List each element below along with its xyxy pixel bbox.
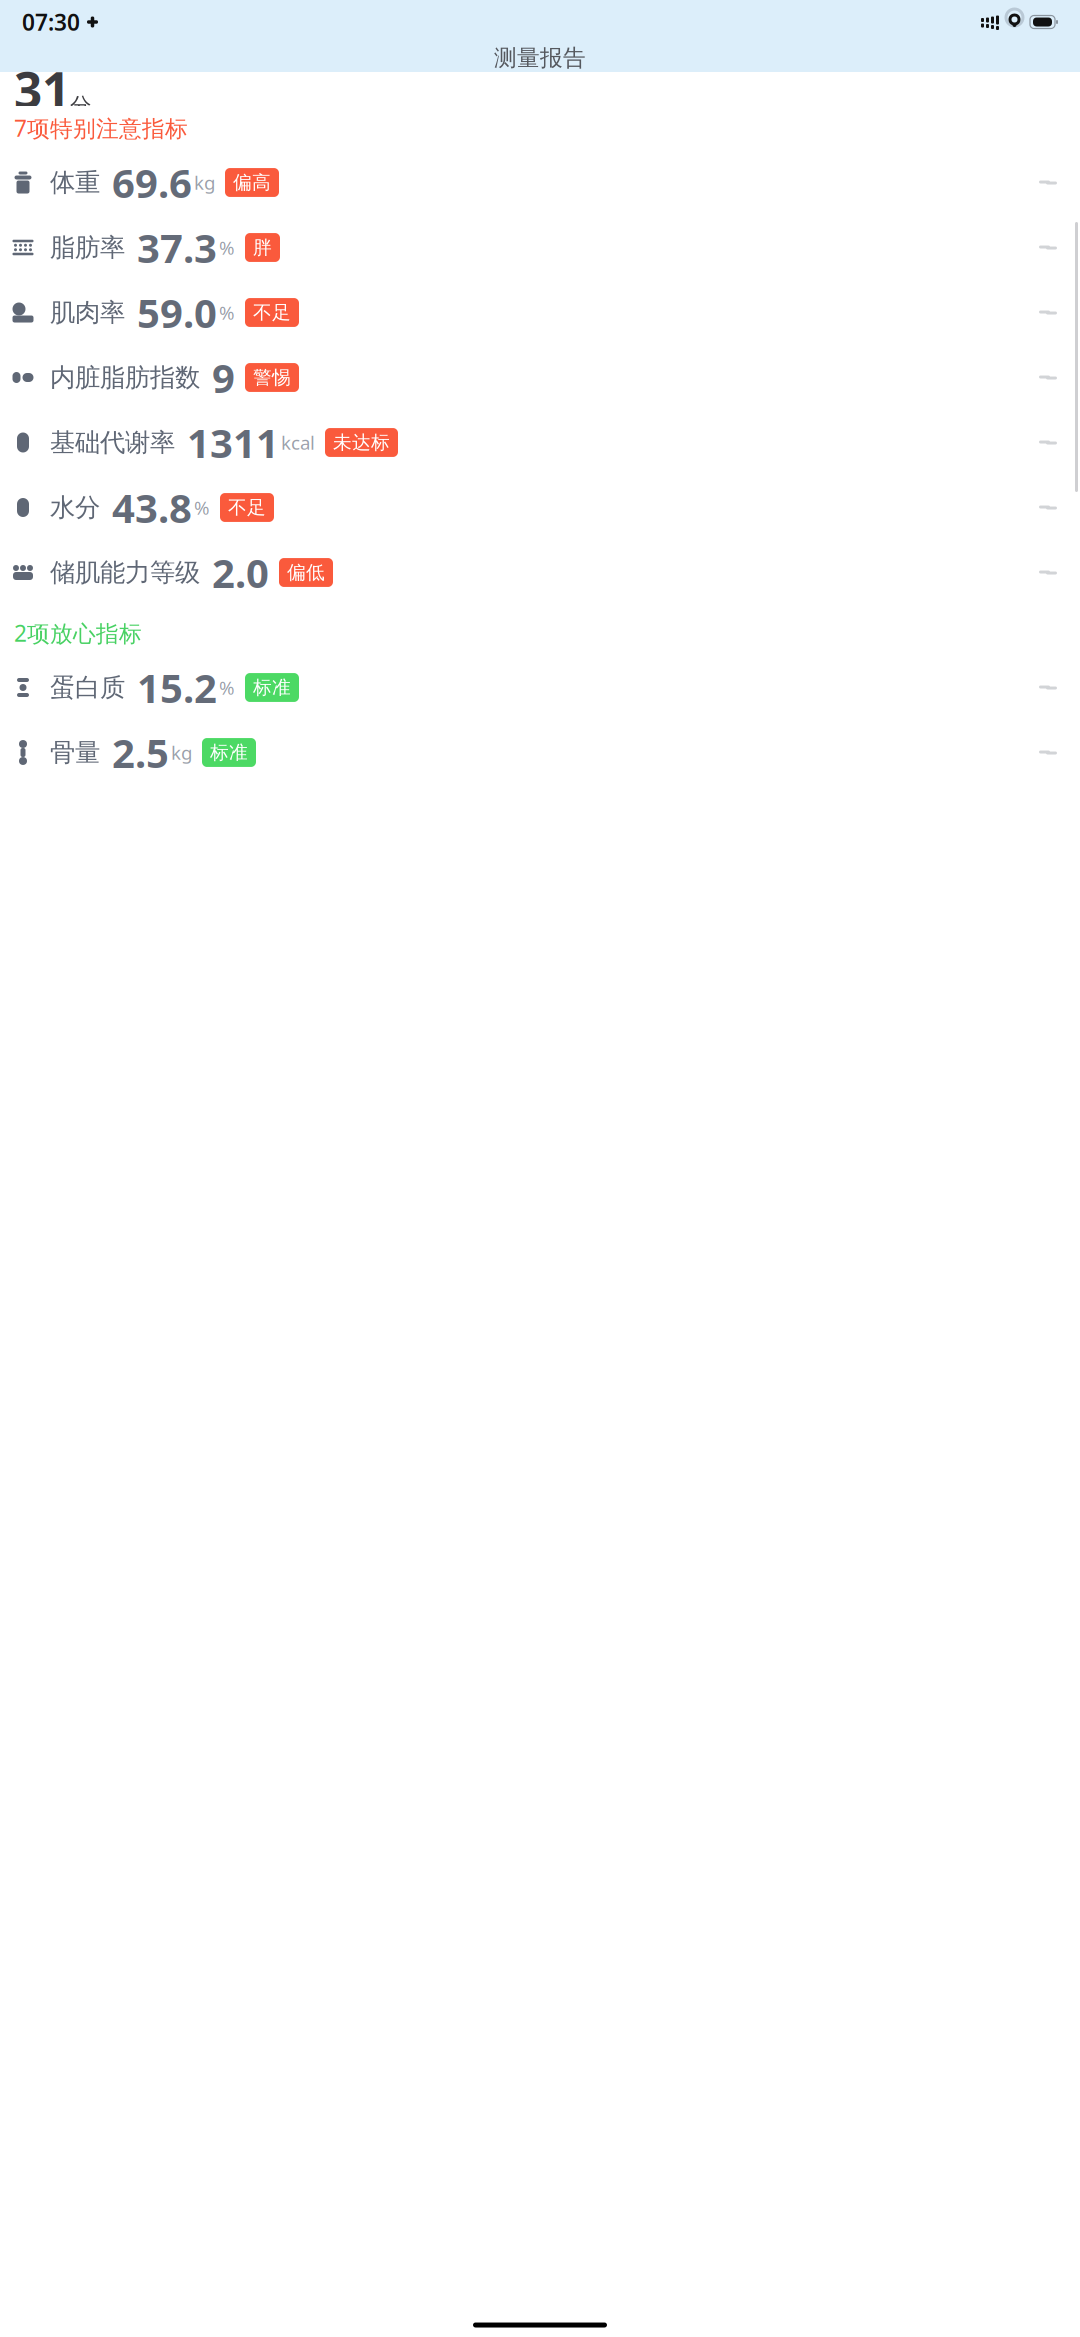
button[interactable]: 内脏脂肪指数 — [0, 345, 1080, 410]
staticText: 07:30 — [22, 7, 80, 37]
staticText: 15.2 — [137, 661, 217, 714]
staticText: 胖 — [253, 236, 272, 259]
staticText: 标准 — [253, 676, 291, 699]
staticText: 偏低 — [287, 561, 325, 584]
staticText: % — [219, 300, 235, 325]
staticText: 9 — [212, 351, 235, 404]
staticText: 31 — [14, 56, 70, 122]
staticText: 基础代谢率 — [50, 427, 175, 458]
staticText: 体重 — [50, 167, 100, 198]
staticText: 37.3 — [137, 221, 217, 274]
staticText: 警惕 — [253, 366, 291, 389]
staticText: % — [194, 495, 210, 520]
staticText: 水分 — [50, 492, 100, 523]
staticText: % — [219, 235, 235, 260]
staticText: 分 — [70, 93, 91, 119]
staticText: 偏高 — [233, 171, 271, 194]
staticText: 蛋白质 — [50, 672, 125, 703]
staticText: kg — [194, 170, 215, 195]
staticText: 内脏脂肪指数 — [50, 362, 200, 393]
staticText: 69.6 — [112, 156, 192, 209]
button[interactable]: 基础代谢率 — [0, 410, 1080, 475]
button[interactable]: 蛋白质 — [0, 655, 1080, 720]
staticText: kcal — [281, 430, 315, 455]
button[interactable]: 骨量 — [0, 720, 1080, 785]
button[interactable]: 体重 — [0, 150, 1080, 215]
staticText: 肌肉率 — [50, 297, 125, 328]
staticText: 1311 — [187, 416, 279, 469]
staticText: 未达标 — [333, 431, 390, 454]
staticText: 59.0 — [137, 286, 217, 339]
staticText: 2.5 — [112, 726, 169, 779]
button[interactable]: 储肌能力等级 — [0, 540, 1080, 605]
staticText: 储肌能力等级 — [50, 557, 200, 588]
button[interactable]: 肌肉率 — [0, 280, 1080, 345]
button[interactable]: 水分 — [0, 475, 1080, 540]
staticText: 2项放心指标 — [14, 618, 142, 648]
staticText: 骨量 — [50, 737, 100, 768]
staticText: 43.8 — [112, 481, 192, 534]
staticText: kg — [171, 740, 192, 765]
staticText: 7项特别注意指标 — [14, 113, 188, 143]
staticText: 不足 — [228, 496, 266, 519]
staticText: 标准 — [210, 741, 248, 764]
staticText: 不足 — [253, 301, 291, 324]
staticText: 2.0 — [212, 546, 269, 599]
button[interactable]: 脂肪率 — [0, 215, 1080, 280]
staticText: 脂肪率 — [50, 232, 125, 263]
staticText: % — [219, 675, 235, 700]
staticText: 测量报告 — [494, 44, 586, 72]
